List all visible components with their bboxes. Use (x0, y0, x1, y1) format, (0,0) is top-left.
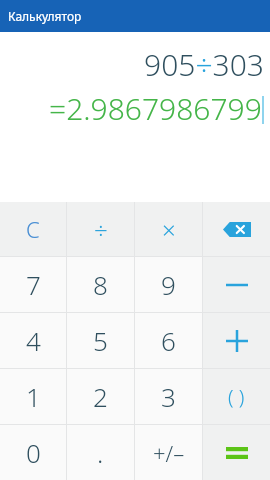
staticText: +/– (153, 438, 185, 468)
staticText: 9 (161, 267, 176, 302)
staticText: . (97, 435, 104, 470)
button[interactable]: Plus (203, 313, 270, 368)
button[interactable]: Multiply (135, 202, 202, 256)
button[interactable]: 8 (67, 257, 134, 312)
staticText: 905÷303 (144, 44, 264, 85)
button[interactable]: 2 (67, 369, 134, 424)
staticText: Калькулятор (8, 8, 82, 24)
staticText: × (162, 213, 176, 246)
button[interactable]: 1 (0, 369, 66, 424)
button[interactable]: 6 (135, 313, 202, 368)
button[interactable]: Parentheses (203, 369, 270, 424)
button[interactable]: 7 (0, 257, 66, 312)
staticText: 5 (93, 323, 108, 358)
staticText: 3 (161, 379, 176, 414)
staticText: ( ) (228, 383, 245, 410)
button[interactable]: 0 (0, 425, 66, 480)
staticText: 8 (93, 267, 108, 302)
button[interactable]: Minus (203, 257, 270, 312)
staticText: 1 (26, 379, 41, 414)
button[interactable]: 5 (67, 313, 134, 368)
staticText: 7 (26, 267, 41, 302)
button[interactable]: Backspace (203, 202, 270, 256)
button[interactable]: Equals (203, 425, 270, 480)
staticText: 2 (93, 379, 108, 414)
staticText: 4 (26, 323, 41, 358)
button[interactable]: Clear (0, 202, 66, 256)
staticText: 0 (26, 435, 41, 470)
button[interactable]: Plus minus (135, 425, 202, 480)
button[interactable]: 9 (135, 257, 202, 312)
button[interactable]: Divide (67, 202, 134, 256)
button[interactable]: 4 (0, 313, 66, 368)
staticText: C (26, 214, 40, 244)
staticText: ÷ (94, 213, 108, 246)
staticText: =2.9867986799 (49, 88, 262, 129)
button[interactable]: Decimal point (67, 425, 134, 480)
button[interactable]: 3 (135, 369, 202, 424)
staticText: 6 (161, 323, 176, 358)
